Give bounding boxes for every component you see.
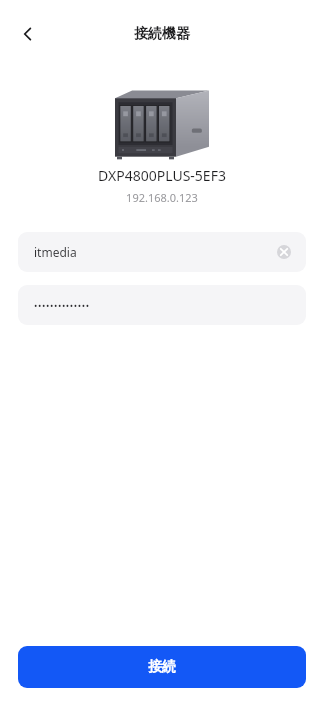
button[interactable]: Clear text [272,240,296,264]
staticText: 192.168.0.123 [126,190,198,205]
staticText: 接続 [148,658,176,676]
button[interactable]: itmedia [18,232,306,272]
staticText: •••••••••••••• [34,299,90,311]
button[interactable]: 接続 [18,646,306,688]
staticText: DXP4800PLUS-5EF3 [98,166,226,185]
button[interactable]: •••••••••••••• [18,285,306,325]
button[interactable]: Back [6,12,50,56]
staticText: 接続機器 [134,25,190,43]
staticText: itmedia [34,244,272,260]
